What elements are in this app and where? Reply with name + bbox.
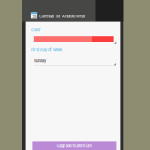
- staticText: First day of week: [31, 47, 62, 52]
- staticText: 25: [32, 15, 36, 19]
- button[interactable]: [34, 36, 114, 42]
- button[interactable]: Sunday: [34, 58, 116, 70]
- staticText: Calendar for Android Wear: [39, 14, 86, 18]
- staticText: Color: [31, 27, 41, 32]
- staticText: Sunday: [34, 58, 46, 63]
- button[interactable]: Upgrade to premium: [32, 141, 116, 150]
- staticText: Upgrade to premium: [56, 143, 92, 148]
